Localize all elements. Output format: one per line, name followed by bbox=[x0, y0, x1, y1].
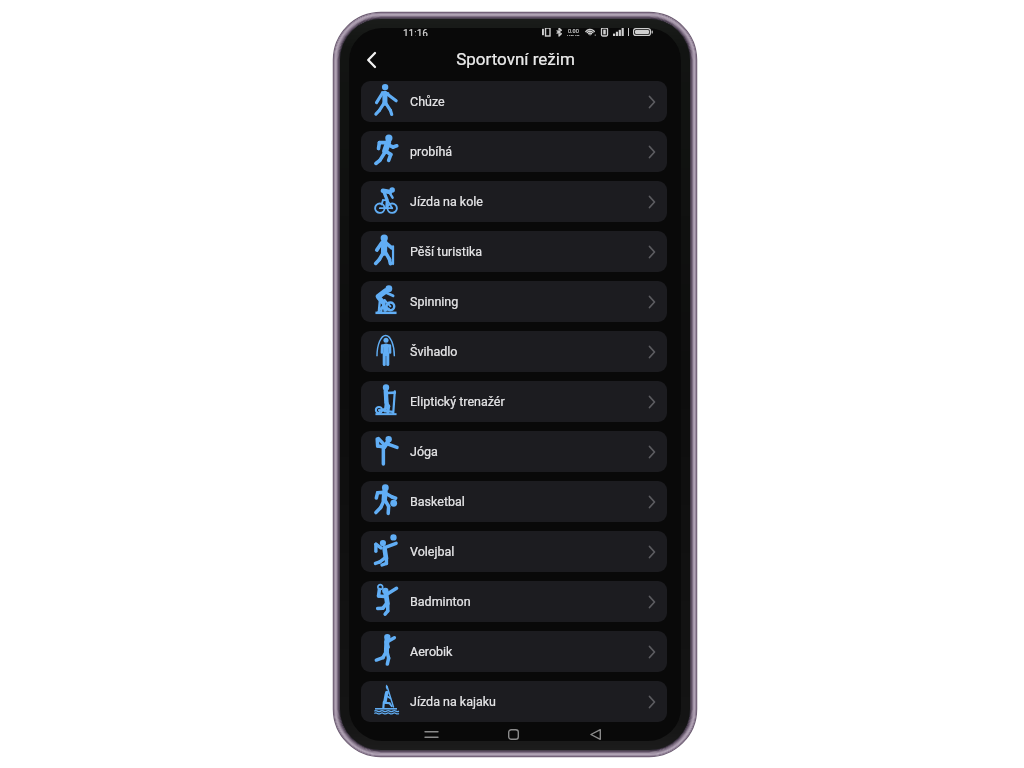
staticText: Pěší turistika bbox=[410, 244, 483, 259]
staticText: Jóga bbox=[410, 444, 438, 459]
staticText: Badminton bbox=[410, 594, 471, 609]
button[interactable]: Badminton bbox=[361, 581, 667, 622]
staticText: Eliptický trenažér bbox=[410, 394, 505, 409]
staticText: Volejbal bbox=[410, 544, 455, 559]
button[interactable]: Jízda na kole bbox=[361, 181, 667, 222]
staticText: Spinning bbox=[410, 294, 459, 309]
staticText: Jízda na kole bbox=[410, 194, 483, 209]
staticText: Švihadlo bbox=[410, 344, 458, 359]
button[interactable]: Švihadlo bbox=[361, 331, 667, 372]
staticText: Basketbal bbox=[410, 494, 465, 509]
button[interactable]: Eliptický trenažér bbox=[361, 381, 667, 422]
staticText: 11:16 bbox=[403, 28, 428, 36]
staticText: Sportovní režim bbox=[456, 49, 575, 69]
staticText: probíhá bbox=[410, 144, 453, 159]
staticText: KB/S bbox=[567, 34, 580, 36]
staticText: Jízda na kajaku bbox=[410, 694, 496, 709]
button[interactable]: Basketbal bbox=[361, 481, 667, 522]
staticText: Aerobik bbox=[410, 644, 453, 659]
button[interactable]: Volejbal bbox=[361, 531, 667, 572]
button[interactable]: Aerobik bbox=[361, 631, 667, 672]
button[interactable]: Spinning bbox=[361, 281, 667, 322]
button[interactable]: Chůze bbox=[361, 81, 667, 122]
button[interactable]: Back bbox=[356, 45, 386, 75]
button[interactable]: Back bbox=[578, 727, 612, 741]
button[interactable]: Pěší turistika bbox=[361, 231, 667, 272]
button[interactable]: Home bbox=[496, 727, 530, 741]
staticText: 0.00 bbox=[568, 28, 579, 34]
staticText: Chůze bbox=[410, 94, 445, 109]
button[interactable]: probíhá bbox=[361, 131, 667, 172]
button[interactable]: Jóga bbox=[361, 431, 667, 472]
button[interactable]: Jízda na kajaku bbox=[361, 681, 667, 722]
button[interactable]: Recents bbox=[414, 727, 448, 741]
